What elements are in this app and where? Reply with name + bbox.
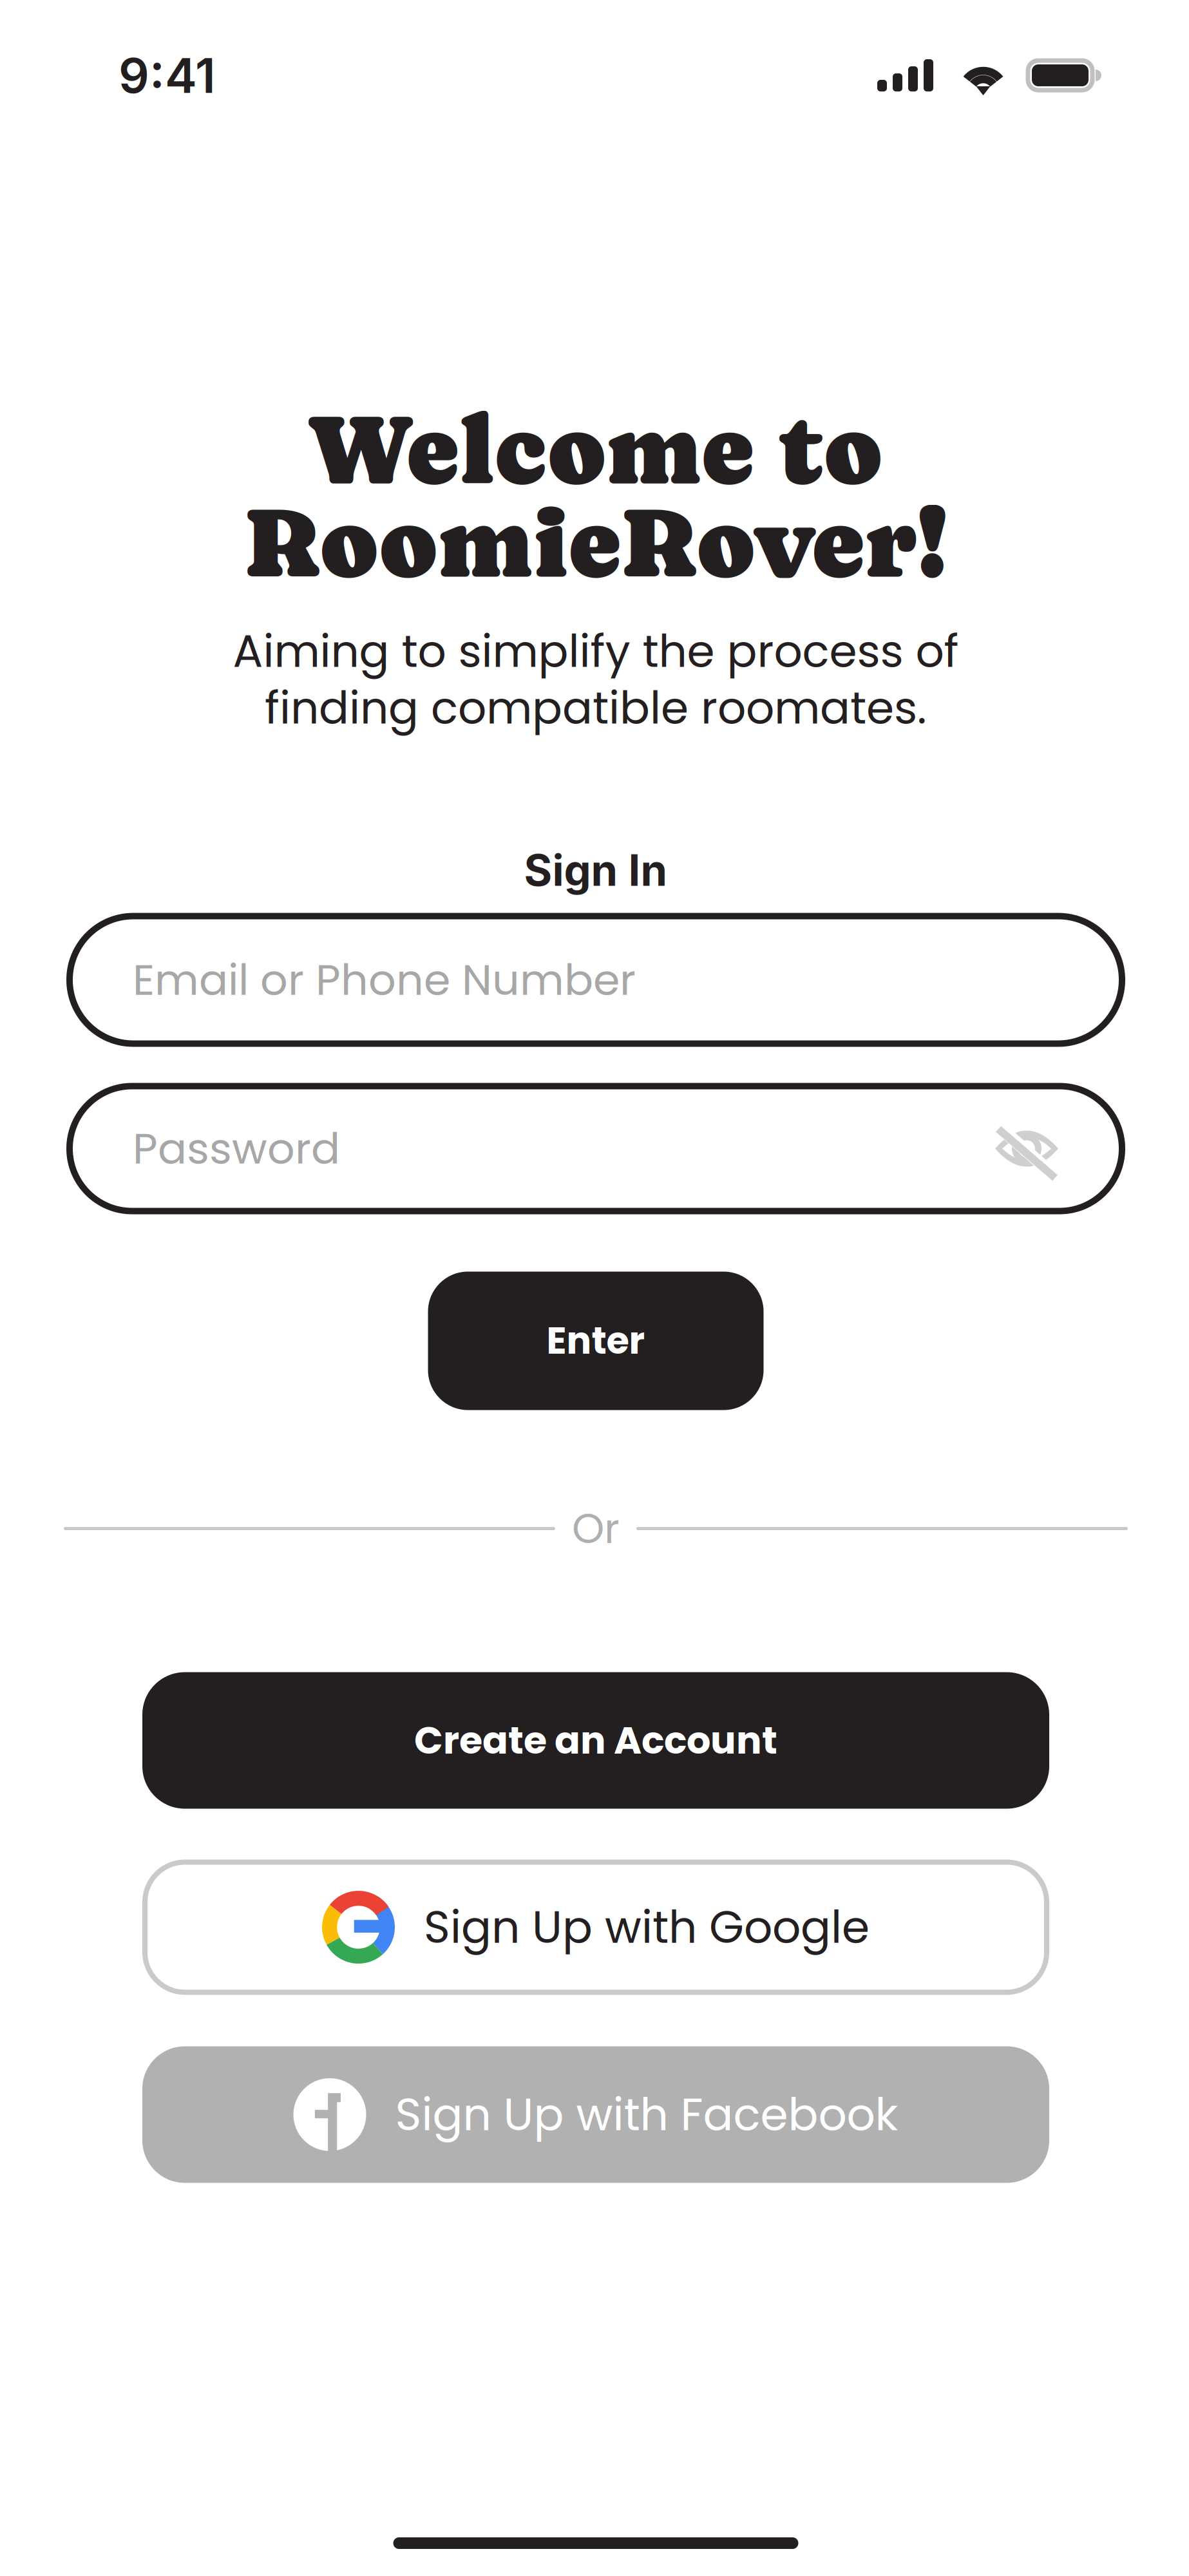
button[interactable]: Sign Up with Facebook — [142, 2046, 1049, 2183]
staticText: 9:41 — [119, 46, 216, 104]
staticText: Sign Up with Facebook — [395, 2083, 898, 2146]
button[interactable]: Enter — [428, 1272, 764, 1410]
staticText: Welcome to — [309, 393, 883, 506]
staticText: RoomieRover! — [244, 486, 947, 599]
staticText: Or — [572, 1500, 620, 1557]
staticText: Create an Account — [414, 1714, 777, 1767]
staticText: Password — [133, 1119, 340, 1179]
staticText: Aiming to simplify the process of — [233, 620, 959, 683]
staticText: Sign In — [524, 844, 668, 896]
staticText: finding compatible roomates. — [265, 677, 927, 739]
button[interactable]: Create an Account — [142, 1672, 1049, 1809]
button[interactable]: Sign Up with Google — [145, 1862, 1047, 1992]
staticText: Sign Up with Google — [424, 1896, 870, 1958]
staticText: Enter — [547, 1315, 645, 1367]
staticText: Email or Phone Number — [133, 950, 636, 1010]
